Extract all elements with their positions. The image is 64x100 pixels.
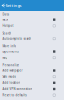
staticText: Add wallpaper	[2, 69, 22, 72]
staticText: FAQ	[2, 56, 7, 59]
button[interactable]: Add VPN connection	[0, 86, 64, 92]
staticText: Search	[2, 32, 11, 35]
staticText: Autocomplete search	[2, 37, 31, 40]
button[interactable]: Reset to defaults	[0, 92, 64, 98]
staticText: More info	[2, 44, 16, 48]
staticText: Hotspot	[2, 24, 13, 28]
button[interactable]: Add wallpaper	[0, 67, 64, 74]
staticText: Reset to defaults	[2, 93, 26, 97]
button[interactable]: Add location	[0, 80, 64, 86]
staticText: Wi-Fi	[2, 18, 8, 21]
staticText: Data	[2, 13, 9, 16]
button[interactable]: Autocomplete search	[0, 36, 64, 42]
staticText: Experiments	[2, 50, 18, 53]
button[interactable]: Hotspot	[0, 23, 64, 29]
staticText: Settings	[6, 3, 22, 8]
staticText: Add VPN connection	[2, 87, 32, 91]
button[interactable]: FAQ	[0, 55, 64, 61]
staticText: Personalize	[2, 63, 19, 67]
staticText: Safe mode	[2, 75, 16, 78]
button[interactable]: Back	[0, 0, 6, 10]
staticText: Add location	[2, 81, 20, 85]
button[interactable]: Experiments	[0, 48, 64, 55]
button[interactable]: Safe mode	[0, 74, 64, 80]
button[interactable]: Wi-Fi	[0, 17, 64, 23]
